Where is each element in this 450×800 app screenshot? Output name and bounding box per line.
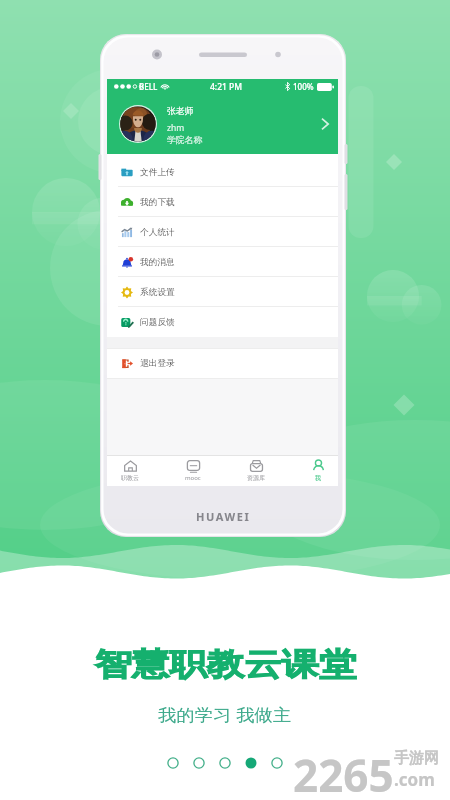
other: Profile details <box>321 118 329 130</box>
button[interactable]: Page 2 <box>193 757 205 769</box>
staticText: 退出登录 <box>140 358 175 369</box>
staticText: 个人统计 <box>140 227 175 238</box>
staticText: .com <box>394 768 435 791</box>
staticText: 100% <box>293 81 314 92</box>
staticText: 我的下载 <box>140 197 175 208</box>
staticText: 我 <box>315 474 321 482</box>
staticText: HUAWEI <box>196 509 251 524</box>
staticText: 问题反馈 <box>140 317 175 328</box>
staticText: 职教云 <box>121 474 139 482</box>
button[interactable]: 资源库 <box>228 457 284 486</box>
staticText: 系统设置 <box>140 287 175 298</box>
staticText: 智慧职教云课堂 <box>95 645 356 684</box>
button[interactable]: mooc <box>165 457 221 486</box>
staticText: zhm <box>167 122 185 134</box>
staticText: 学院名称 <box>167 135 203 146</box>
button[interactable]: 张老师 <box>107 94 338 154</box>
staticText: 我的学习 我做主 <box>158 703 292 726</box>
staticText: 4:21 PM <box>210 81 243 93</box>
button[interactable]: 我的消息 <box>107 247 338 277</box>
staticText: 2265 <box>293 745 394 800</box>
button[interactable]: 文件上传 <box>107 157 338 187</box>
button[interactable]: 问题反馈 <box>107 307 338 337</box>
button[interactable]: 职教云 <box>102 457 158 486</box>
button[interactable]: 我的下载 <box>107 187 338 217</box>
staticText: 手游网 <box>394 749 439 768</box>
staticText: 资源库 <box>247 474 265 482</box>
staticText: 我的消息 <box>140 257 175 268</box>
staticText: 文件上传 <box>140 167 175 178</box>
button[interactable]: 我 <box>290 457 346 486</box>
staticText: mooc <box>185 474 201 482</box>
button[interactable]: Page 1 <box>167 757 179 769</box>
staticText: BELL <box>139 81 158 92</box>
button[interactable]: Page 4 <box>245 757 257 769</box>
button[interactable]: Page 3 <box>219 757 231 769</box>
button[interactable]: 系统设置 <box>107 277 338 307</box>
button[interactable]: Page 5 <box>271 757 283 769</box>
button[interactable]: 个人统计 <box>107 217 338 247</box>
button[interactable]: 退出登录 <box>107 348 338 378</box>
staticText: 张老师 <box>167 106 194 117</box>
